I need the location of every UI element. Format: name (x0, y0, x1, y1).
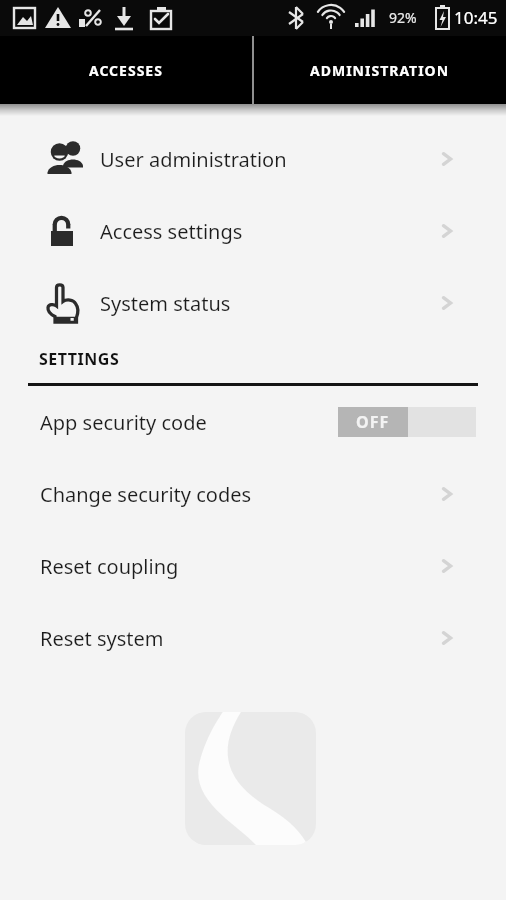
button[interactable]: ACCESSES (0, 36, 252, 104)
other: Open (436, 148, 458, 170)
button[interactable]: System status (0, 267, 506, 339)
other: Open (436, 220, 458, 242)
staticText: Reset coupling (40, 553, 179, 580)
staticText: 10:45 (454, 6, 498, 29)
button[interactable]: Change security codes (0, 458, 506, 530)
staticText: ACCESSES (89, 61, 163, 80)
button[interactable]: App security code (0, 386, 506, 458)
other: Open (436, 555, 458, 577)
button[interactable]: App security code switch, off (338, 407, 476, 437)
button[interactable]: User administration (0, 123, 506, 195)
other: Open (436, 483, 458, 505)
staticText: OFF (356, 411, 390, 433)
staticText: Change security codes (40, 481, 252, 508)
staticText: Access settings (100, 218, 243, 245)
other: Open (436, 627, 458, 649)
staticText: Reset system (40, 625, 164, 652)
button[interactable]: ADMINISTRATION (254, 36, 506, 104)
staticText: ADMINISTRATION (310, 61, 450, 80)
button[interactable]: Reset system (0, 602, 506, 674)
staticText: 92% (389, 8, 417, 27)
staticText: User administration (100, 146, 287, 173)
staticText: System status (100, 290, 231, 317)
other: Open (436, 292, 458, 314)
button[interactable]: Access settings (0, 195, 506, 267)
staticText: SETTINGS (39, 348, 120, 370)
button[interactable]: Reset coupling (0, 530, 506, 602)
staticText: App security code (40, 409, 207, 436)
